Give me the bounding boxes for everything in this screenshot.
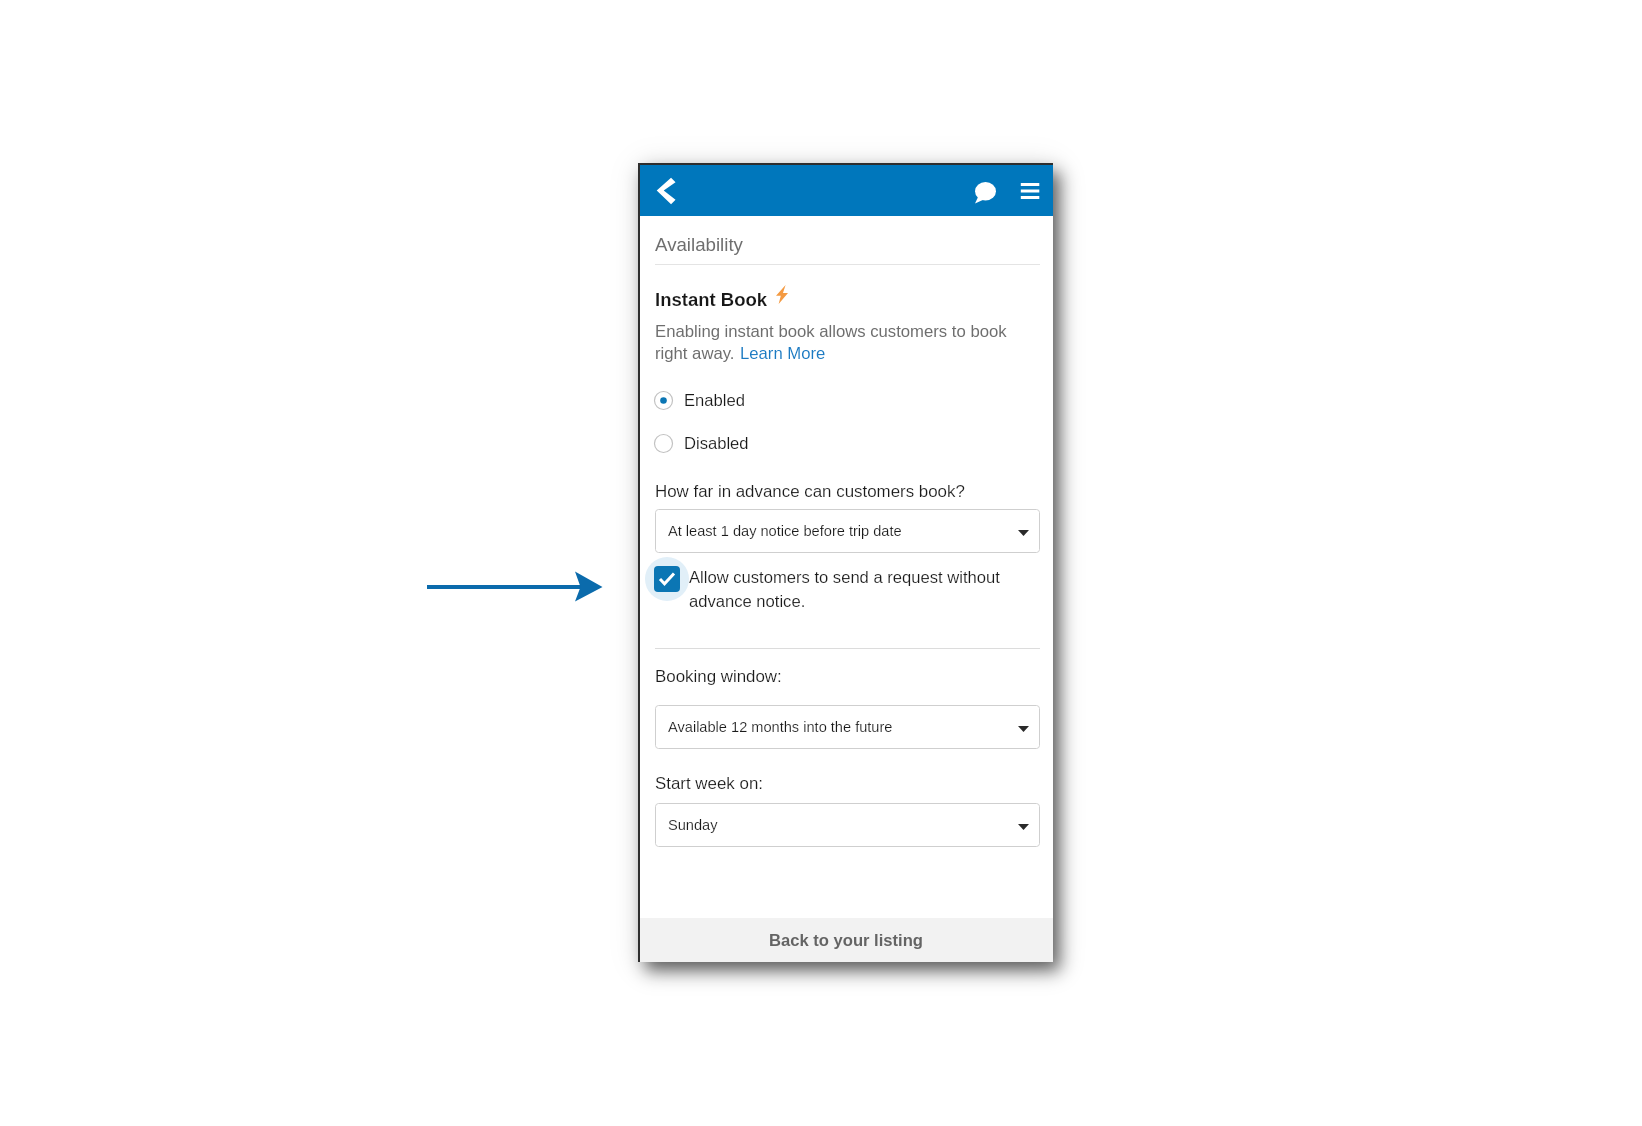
staticText: right away. bbox=[655, 344, 740, 363]
staticText: Instant Book bbox=[655, 289, 768, 310]
button[interactable]: At least 1 day notice before trip date bbox=[655, 509, 1040, 553]
staticText: Back to your listing bbox=[769, 931, 923, 950]
button[interactable]: Back bbox=[642, 167, 690, 215]
staticText: Availability bbox=[655, 234, 743, 255]
staticText: Enabled bbox=[684, 391, 745, 410]
button[interactable]: Sunday bbox=[655, 803, 1040, 847]
button[interactable]: Learn More bbox=[740, 344, 826, 363]
button[interactable]: Enabled bbox=[654, 391, 1053, 410]
staticText: Sunday bbox=[668, 817, 718, 833]
staticText: Booking window: bbox=[655, 667, 782, 686]
staticText: Enabling instant book allows customers t… bbox=[655, 322, 1007, 341]
staticText: At least 1 day notice before trip date bbox=[668, 523, 902, 539]
button[interactable]: Menu bbox=[1006, 167, 1054, 215]
button[interactable]: Back to your listing bbox=[638, 918, 1053, 962]
button[interactable]: Messages bbox=[961, 167, 1009, 215]
button[interactable]: Available 12 months into the future bbox=[655, 705, 1040, 749]
staticText: Start week on: bbox=[655, 774, 763, 793]
staticText: Disabled bbox=[684, 434, 749, 453]
staticText: Available 12 months into the future bbox=[668, 719, 893, 735]
staticText: Allow customers to send a request withou… bbox=[689, 568, 1040, 611]
button[interactable]: Disabled bbox=[654, 434, 1053, 453]
staticText: How far in advance can customers book? bbox=[655, 482, 965, 501]
button[interactable]: Allow customers to send a request withou… bbox=[645, 556, 1040, 611]
